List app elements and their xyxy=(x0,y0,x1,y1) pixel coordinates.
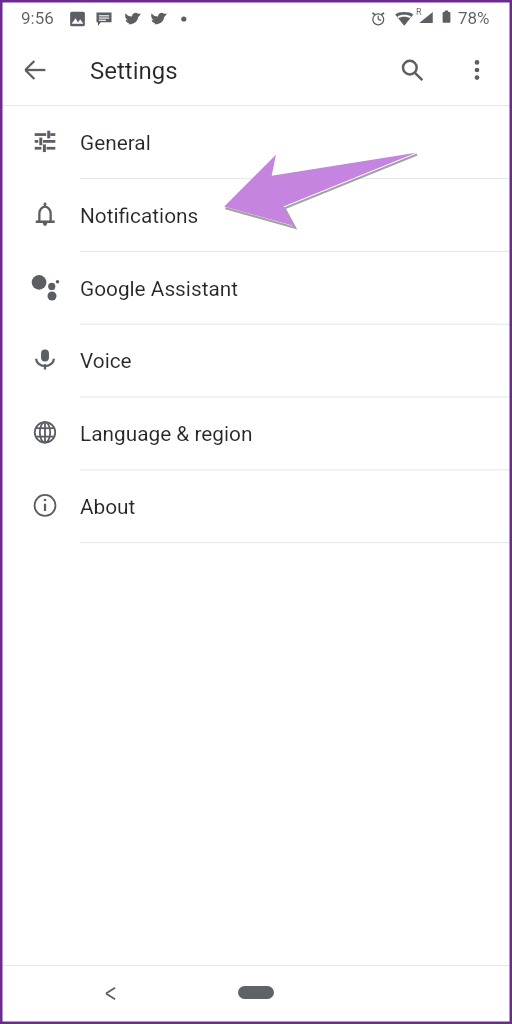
staticText: General xyxy=(80,131,151,155)
staticText: Google Assistant xyxy=(80,277,239,301)
button[interactable]: General xyxy=(0,105,512,178)
button[interactable]: Back xyxy=(90,973,131,1014)
button[interactable]: About xyxy=(0,469,512,542)
staticText: About xyxy=(80,495,136,519)
staticText: Language & region xyxy=(80,422,253,446)
staticText: 9:56 xyxy=(21,8,54,28)
button[interactable]: Google Assistant xyxy=(0,251,512,324)
button[interactable]: More options xyxy=(453,46,500,93)
staticText: R xyxy=(416,7,422,18)
staticText: 78% xyxy=(458,8,490,28)
staticText: Settings xyxy=(90,57,178,85)
button[interactable]: Notifications xyxy=(0,178,512,251)
button[interactable]: Voice xyxy=(0,323,512,396)
button[interactable]: Search xyxy=(388,46,435,93)
button[interactable]: Home xyxy=(238,986,274,999)
button[interactable]: Language & region xyxy=(0,396,512,469)
staticText: Voice xyxy=(80,349,132,373)
button[interactable]: Navigate up xyxy=(11,46,59,94)
staticText: Notifications xyxy=(80,204,199,228)
